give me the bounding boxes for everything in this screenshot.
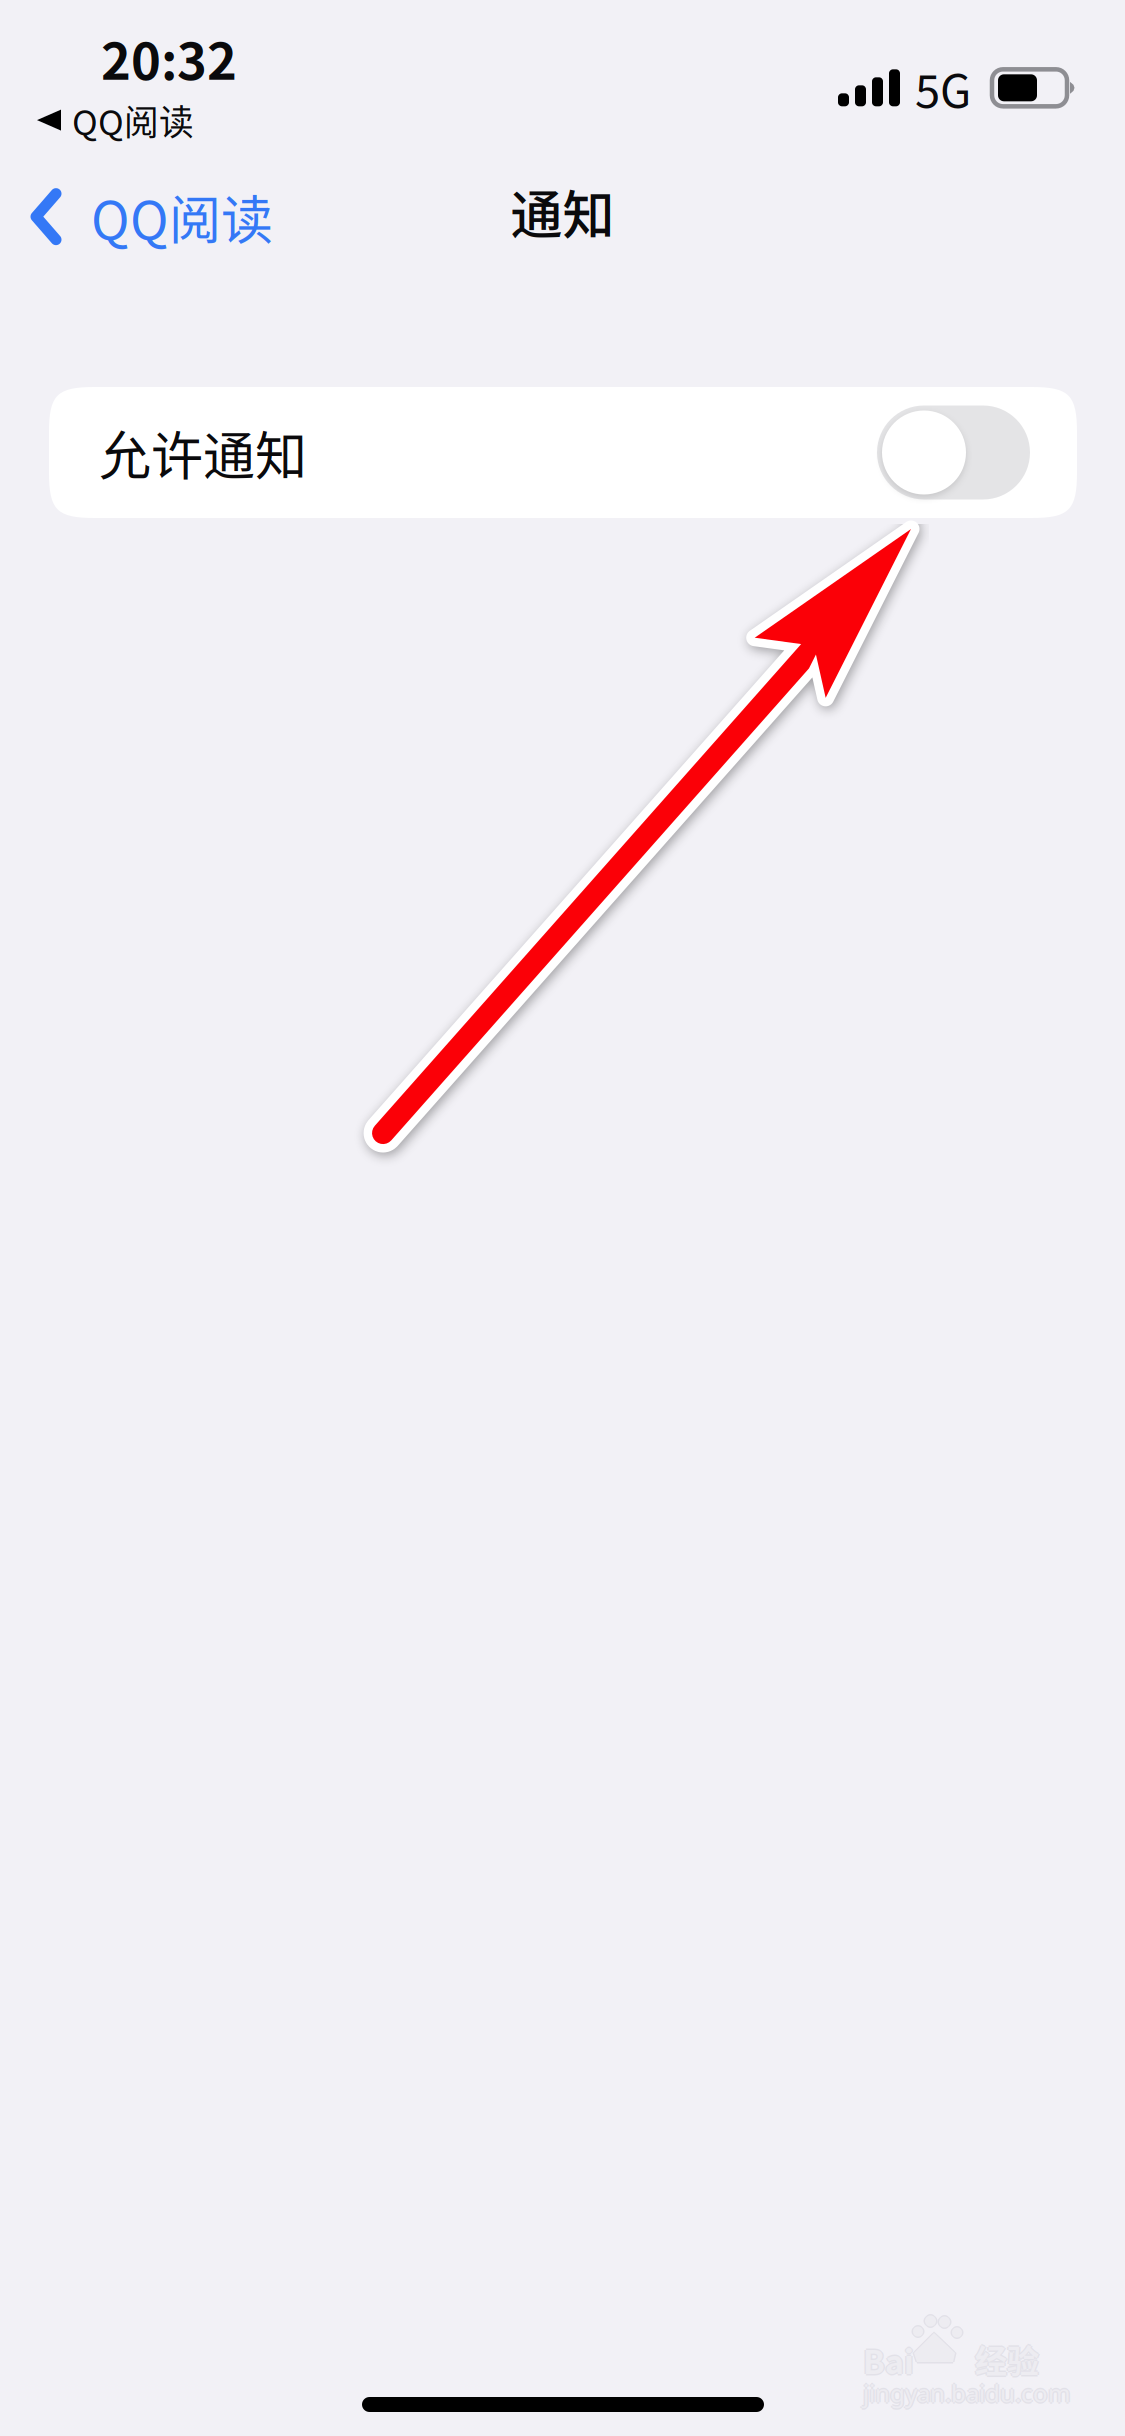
staticText: jingyan.baidu.com	[863, 2377, 1070, 2409]
staticText: jingyan.baidu.com	[863, 2378, 1070, 2410]
button[interactable]: 允许通知	[877, 405, 1030, 499]
button[interactable]: QQ阅读	[37, 95, 194, 145]
staticText: 经验	[976, 2336, 1040, 2382]
button[interactable]: QQ阅读	[0, 159, 293, 274]
staticText: 经验	[975, 2337, 1039, 2384]
staticText: 20:32	[101, 21, 237, 94]
staticText: Bai	[863, 2337, 914, 2383]
staticText: Bai	[864, 2337, 915, 2383]
staticText: Bai	[863, 2338, 914, 2385]
staticText: QQ阅读	[72, 95, 194, 145]
staticText: 经验	[975, 2334, 1039, 2381]
staticText: 经验	[973, 2336, 1037, 2382]
staticText: Bai	[861, 2337, 912, 2383]
staticText: QQ阅读	[91, 179, 273, 254]
staticText: 5G	[915, 55, 971, 121]
staticText: 允许通知	[99, 415, 307, 490]
staticText: jingyan.baidu.com	[863, 2375, 1070, 2407]
staticText: jingyan.baidu.com	[861, 2377, 1068, 2409]
staticText: 通知	[510, 174, 614, 249]
staticText: jingyan.baidu.com	[864, 2377, 1071, 2409]
staticText: 经验	[975, 2336, 1039, 2382]
staticText: Bai	[863, 2335, 914, 2382]
